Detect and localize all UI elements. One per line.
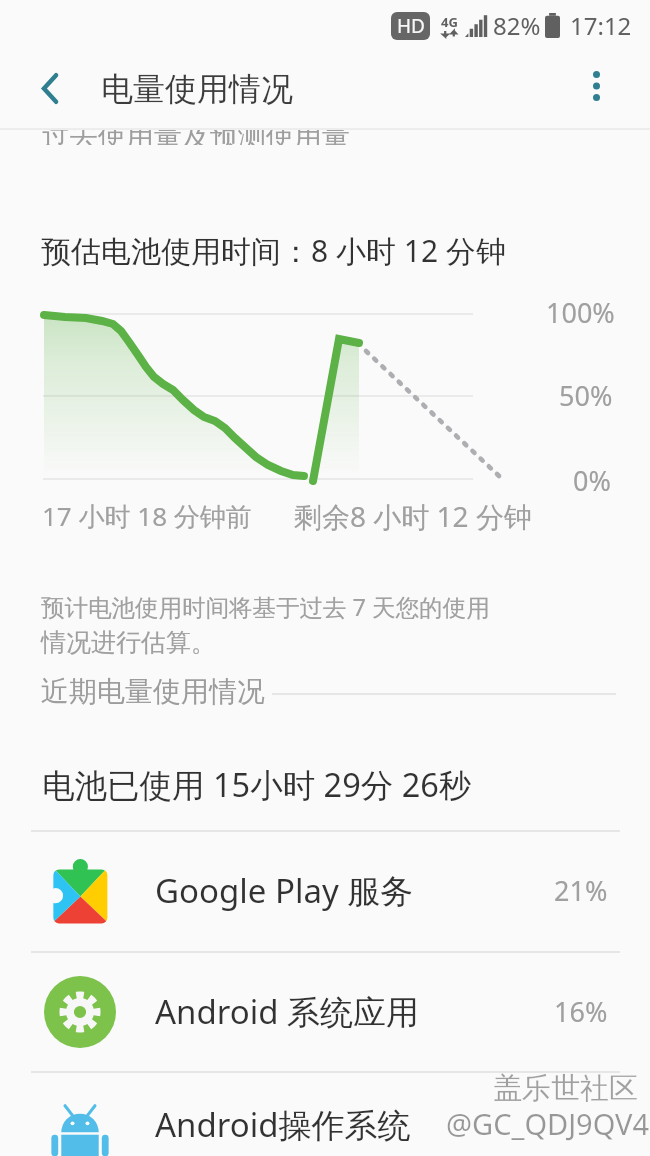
staticText: Android 系统应用: [155, 989, 420, 1034]
staticText: 100%: [546, 294, 615, 331]
staticText: @GC_QDJ9QV4I: [446, 1104, 650, 1143]
staticText: 过去使用量及预测使用量: [42, 129, 350, 145]
staticText: 50%: [559, 377, 613, 414]
button[interactable]: Back: [22, 60, 78, 116]
staticText: 0%: [573, 462, 611, 499]
button[interactable]: Android操作系统: [0, 1071, 650, 1156]
staticText: Google Play 服务: [155, 868, 414, 913]
staticText: 82%: [493, 9, 541, 42]
staticText: 盖乐世社区: [493, 1070, 638, 1107]
staticText: 17:12: [570, 9, 632, 42]
staticText: 剩余8 小时 12 分钟: [294, 497, 532, 535]
staticText: HD: [397, 13, 425, 39]
staticText: 16%: [554, 993, 608, 1030]
staticText: 4G: [441, 13, 458, 31]
button[interactable]: More options: [568, 58, 624, 114]
staticText: 预估电池使用时间：8 小时 12 分钟: [41, 230, 506, 271]
button[interactable]: Android 系统应用: [0, 951, 650, 1072]
staticText: Android操作系统: [155, 1102, 411, 1147]
staticText: 预计电池使用时间将基于过去 7 天您的使用: [41, 591, 490, 623]
staticText: 近期电量使用情况: [41, 674, 265, 709]
staticText: 情况进行估算。: [41, 627, 216, 658]
staticText: 电量使用情况: [101, 69, 293, 109]
staticText: 电池已使用 15小时 29分 26秒: [42, 762, 472, 806]
button[interactable]: Google Play 服务: [0, 830, 650, 951]
staticText: 17 小时 18 分钟前: [42, 498, 252, 534]
staticText: 21%: [554, 872, 608, 909]
